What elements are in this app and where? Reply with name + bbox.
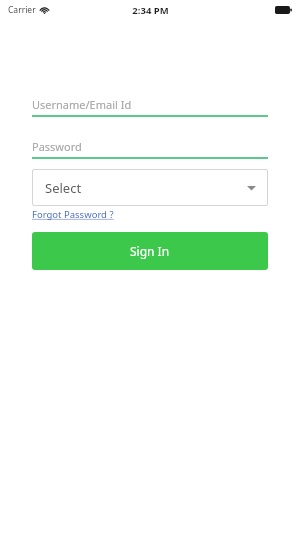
button[interactable]: Sign In: [32, 232, 268, 270]
staticText: Sign In: [130, 243, 170, 259]
staticText: Username/Email Id: [32, 97, 132, 112]
staticText: Select: [45, 179, 82, 197]
staticText: Forgot Password ?: [32, 208, 114, 221]
button[interactable]: Forgot Password ?: [32, 208, 114, 221]
button[interactable]: Password: [32, 135, 268, 159]
button[interactable]: Select: [32, 169, 268, 206]
button[interactable]: Username/Email Id: [32, 93, 268, 117]
staticText: 2:34 PM: [132, 4, 169, 17]
staticText: Carrier: [8, 4, 36, 16]
staticText: Password: [32, 139, 82, 154]
